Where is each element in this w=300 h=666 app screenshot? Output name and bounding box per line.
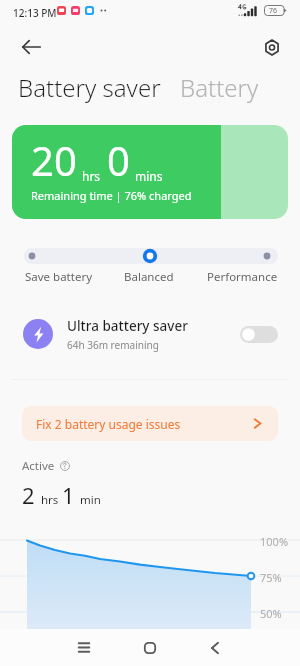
button[interactable]: Balanced <box>124 269 174 285</box>
staticText: 75% <box>260 570 282 585</box>
button[interactable]: 20 <box>12 125 288 219</box>
button[interactable]: Fix 2 battery usage issues <box>22 406 278 441</box>
button[interactable]: Ultra battery saver toggle <box>240 326 278 343</box>
button[interactable]: Home <box>117 629 182 666</box>
staticText: Ultra battery saver <box>67 317 188 335</box>
staticText: 2 <box>22 480 35 510</box>
staticText: min <box>80 492 101 508</box>
button[interactable]: Recents <box>51 629 116 666</box>
staticText: mins <box>135 168 163 184</box>
button[interactable]: Save battery <box>25 269 93 285</box>
staticText: 20 <box>31 133 77 187</box>
staticText: hrs <box>82 168 101 184</box>
staticText: Remaining time | 76% charged <box>31 188 192 203</box>
button[interactable]: Ultra battery saver <box>23 311 278 357</box>
button[interactable]: Settings <box>256 31 288 63</box>
staticText: 100% <box>260 534 289 549</box>
staticText: 0 <box>107 133 130 187</box>
staticText: 76 <box>269 6 278 16</box>
button[interactable]: Active <box>22 458 70 474</box>
staticText: Active <box>22 458 55 474</box>
button[interactable]: Performance <box>207 269 278 285</box>
button[interactable]: Back <box>15 31 47 63</box>
button[interactable]: Battery <box>180 71 259 104</box>
other: Help <box>60 461 70 471</box>
staticText: Fix 2 battery usage issues <box>36 416 253 432</box>
staticText: 12:13 PM <box>13 6 57 20</box>
staticText: 1 <box>62 480 75 510</box>
button[interactable]: Back <box>182 629 247 666</box>
staticText: 50% <box>260 606 282 621</box>
staticText: 64h 36m remaining <box>67 338 159 352</box>
staticText: hrs <box>41 492 59 508</box>
button[interactable]: Battery saver <box>18 71 161 104</box>
button[interactable] <box>24 248 278 264</box>
